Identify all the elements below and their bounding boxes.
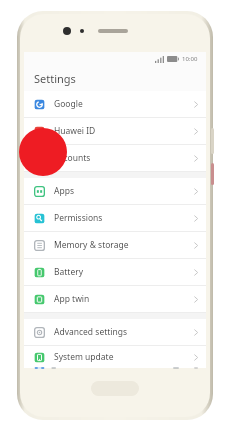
- button[interactable]: Permissions: [24, 205, 206, 231]
- staticText: Apps: [54, 185, 194, 197]
- staticText: 10:00: [182, 55, 198, 63]
- staticText: Battery: [54, 266, 194, 278]
- button[interactable]: System update: [24, 346, 206, 368]
- staticText: Huawei ID: [54, 125, 194, 137]
- button[interactable]: App twin: [24, 286, 206, 312]
- button[interactable]: Advanced settings: [24, 319, 206, 345]
- staticText: Settings: [34, 71, 76, 86]
- button[interactable]: Huawei ID: [24, 118, 206, 144]
- button[interactable]: Memory & storage: [24, 232, 206, 258]
- staticText: Accounts: [54, 152, 194, 164]
- button[interactable]: Accounts: [24, 145, 206, 171]
- button[interactable]: Battery: [24, 259, 206, 285]
- staticText: Permissions: [54, 212, 194, 224]
- staticText: Advanced settings: [54, 326, 194, 338]
- button[interactable]: Google: [24, 91, 206, 117]
- staticText: Memory & storage: [54, 239, 194, 251]
- staticText: System update: [54, 351, 194, 363]
- staticText: App twin: [54, 293, 194, 305]
- staticText: Google: [54, 98, 194, 110]
- button[interactable]: Apps: [24, 178, 206, 204]
